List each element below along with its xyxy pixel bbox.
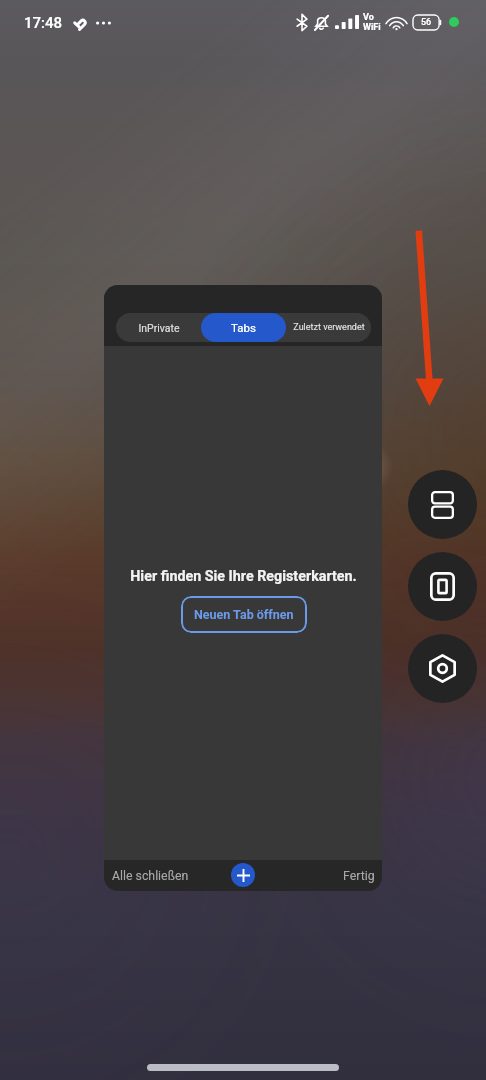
staticText: InPrivate bbox=[138, 322, 180, 334]
button[interactable]: Zuletzt verwendet bbox=[286, 313, 371, 342]
button[interactable]: Fertig bbox=[343, 869, 382, 883]
staticText: 56 bbox=[421, 17, 432, 28]
button[interactable]: Alle schließen bbox=[104, 869, 189, 883]
button[interactable]: Tabs bbox=[201, 313, 286, 342]
staticText: Zuletzt verwendet bbox=[293, 322, 365, 333]
button[interactable]: Neuer Tab bbox=[231, 863, 255, 887]
button[interactable]: Floating window bbox=[408, 552, 477, 621]
button[interactable]: Split screen bbox=[408, 470, 477, 539]
staticText: Tabs bbox=[231, 321, 256, 334]
button[interactable]: InPrivate bbox=[116, 313, 201, 342]
staticText: Vo WiFi bbox=[363, 12, 381, 32]
button[interactable]: Neuen Tab öffnen bbox=[181, 596, 307, 633]
staticText: Neuen Tab öffnen bbox=[194, 607, 294, 622]
button[interactable]: App settings bbox=[408, 634, 477, 703]
staticText: 17:48 bbox=[24, 14, 63, 32]
staticText: Hier finden Sie Ihre Registerkarten. bbox=[130, 568, 357, 585]
